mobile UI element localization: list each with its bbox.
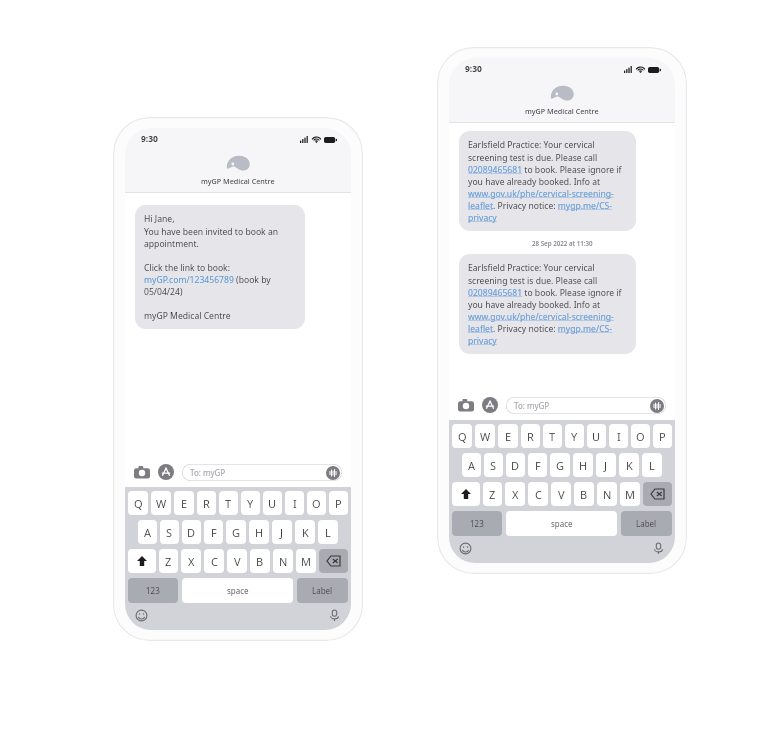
button[interactable]: H xyxy=(249,520,269,544)
button[interactable]: P xyxy=(653,424,672,448)
button[interactable]: E xyxy=(498,424,518,448)
staticText: Y xyxy=(247,496,254,511)
button[interactable]: Dictate xyxy=(328,609,341,622)
button[interactable]: Z xyxy=(483,482,502,506)
button[interactable]: N xyxy=(273,549,293,573)
button[interactable]: C xyxy=(528,482,548,506)
button[interactable]: T xyxy=(543,424,562,448)
staticText: X xyxy=(188,554,195,569)
staticText: space xyxy=(227,585,249,596)
button[interactable]: To: myGP xyxy=(182,464,342,481)
button[interactable]: I xyxy=(285,491,304,515)
button[interactable]: H xyxy=(573,453,593,477)
button[interactable]: Dictate xyxy=(652,542,665,555)
staticText: I xyxy=(617,429,621,444)
staticText: I xyxy=(293,496,297,511)
button[interactable]: K xyxy=(619,453,639,477)
button[interactable]: L xyxy=(318,520,338,544)
button[interactable]: L xyxy=(642,453,662,477)
button[interactable]: Q xyxy=(452,424,472,448)
button[interactable]: Earlsfield Practice: Your cervical scree… xyxy=(459,131,636,231)
button[interactable]: Shift xyxy=(128,549,156,573)
button[interactable]: Earlsfield Practice: Your cervical scree… xyxy=(459,254,636,354)
button[interactable]: To: myGP xyxy=(506,397,666,414)
button[interactable]: U xyxy=(263,491,282,515)
button[interactable]: O xyxy=(631,424,650,448)
button[interactable]: K xyxy=(295,520,315,544)
button[interactable]: A xyxy=(462,453,481,477)
staticText: E xyxy=(505,429,512,444)
staticText: U xyxy=(592,429,601,444)
button[interactable]: J xyxy=(596,453,616,477)
button[interactable]: C xyxy=(204,549,224,573)
button[interactable]: W xyxy=(475,424,495,448)
button[interactable]: Z xyxy=(159,549,178,573)
button[interactable]: D xyxy=(182,520,201,544)
button[interactable]: S xyxy=(484,453,503,477)
button[interactable]: N xyxy=(597,482,617,506)
button[interactable]: J xyxy=(272,520,292,544)
staticText: K xyxy=(626,458,633,473)
button[interactable]: Shift xyxy=(452,482,480,506)
button[interactable]: R xyxy=(521,424,540,448)
button[interactable]: Emoji xyxy=(459,542,472,555)
staticText: Earlsfield Practice: Your cervical scree… xyxy=(468,139,627,223)
staticText: R xyxy=(527,429,534,444)
button[interactable]: R xyxy=(197,491,216,515)
button[interactable]: Label xyxy=(621,511,672,536)
staticText: F xyxy=(535,458,541,473)
button[interactable]: 123 xyxy=(128,578,178,603)
staticText: O xyxy=(636,429,645,444)
button[interactable]: F xyxy=(528,453,547,477)
button[interactable]: Backspace xyxy=(319,549,348,573)
button[interactable]: G xyxy=(226,520,246,544)
button[interactable]: space xyxy=(182,578,293,603)
button[interactable]: D xyxy=(506,453,525,477)
button[interactable]: E xyxy=(174,491,194,515)
button[interactable]: X xyxy=(181,549,201,573)
button[interactable]: A xyxy=(138,520,157,544)
button[interactable]: Camera xyxy=(134,464,150,480)
button[interactable]: T xyxy=(219,491,238,515)
button[interactable]: Y xyxy=(241,491,260,515)
staticText: N xyxy=(603,487,612,502)
button[interactable]: Apps xyxy=(482,397,498,413)
staticText: T xyxy=(549,429,556,444)
button[interactable]: X xyxy=(505,482,525,506)
button[interactable]: V xyxy=(227,549,247,573)
button[interactable]: V xyxy=(551,482,571,506)
button[interactable]: I xyxy=(609,424,628,448)
button[interactable]: O xyxy=(307,491,326,515)
button[interactable]: Label xyxy=(297,578,348,603)
button[interactable]: B xyxy=(250,549,270,573)
staticText: L xyxy=(649,458,655,473)
button[interactable]: W xyxy=(151,491,171,515)
staticText: W xyxy=(480,429,491,444)
button[interactable]: Y xyxy=(565,424,584,448)
button[interactable]: space xyxy=(506,511,617,536)
button[interactable]: 123 xyxy=(452,511,502,536)
button[interactable]: Backspace xyxy=(643,482,672,506)
button[interactable]: U xyxy=(587,424,606,448)
button[interactable]: M xyxy=(296,549,316,573)
staticText: 9:30 xyxy=(465,63,482,75)
button[interactable]: Q xyxy=(128,491,148,515)
button[interactable]: B xyxy=(574,482,594,506)
button[interactable]: Camera xyxy=(458,397,474,413)
staticText: R xyxy=(203,496,210,511)
button[interactable]: S xyxy=(160,520,179,544)
staticText: C xyxy=(211,554,218,569)
button[interactable]: G xyxy=(550,453,570,477)
button[interactable]: Apps xyxy=(158,464,174,480)
staticText: J xyxy=(280,525,284,540)
staticText: 28 Sep 2022 at 11:30 xyxy=(532,239,593,247)
staticText: To: myGP xyxy=(514,400,550,411)
staticText: Z xyxy=(165,554,172,569)
staticText: Y xyxy=(571,429,578,444)
button[interactable]: Emoji xyxy=(135,609,148,622)
button[interactable]: M xyxy=(620,482,640,506)
button[interactable]: Hi Jane, You have been invited to book a… xyxy=(135,205,305,329)
button[interactable]: P xyxy=(329,491,348,515)
staticText: B xyxy=(580,487,588,502)
button[interactable]: F xyxy=(204,520,223,544)
